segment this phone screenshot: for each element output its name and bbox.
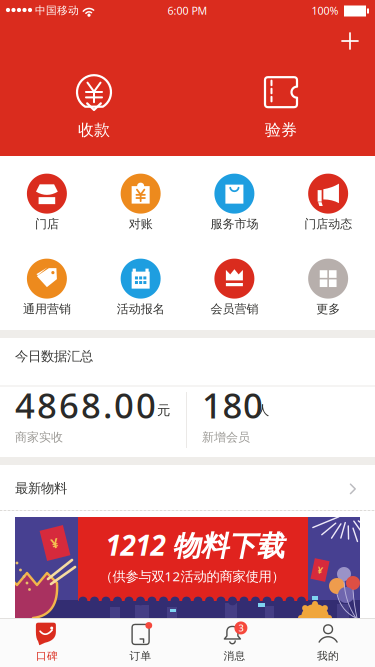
button[interactable]: 门店动态 (282, 169, 375, 235)
staticText: 4868.00 (15, 382, 156, 428)
staticText: 收款 (78, 120, 110, 140)
button[interactable]: 会员营销 (188, 254, 281, 320)
staticText: 门店 (35, 217, 59, 231)
staticText: 中国移动 (35, 4, 79, 17)
staticText: ¥ (51, 534, 59, 552)
staticText: 最新物料 (15, 480, 67, 496)
staticText: 对账 (129, 217, 153, 231)
staticText: 100% (311, 3, 338, 18)
staticText: 今日数据汇总 (15, 348, 93, 364)
button[interactable]: 最新物料 (0, 465, 375, 510)
button[interactable]: 3 (188, 618, 281, 666)
staticText: 活动报名 (117, 302, 165, 316)
staticText: 口碑 (36, 649, 58, 662)
button[interactable]: 服务市场 (188, 169, 281, 235)
button[interactable]: 验券 (206, 67, 356, 143)
staticText: 服务市场 (210, 217, 258, 231)
staticText: 1212 物料下载 (105, 526, 284, 564)
staticText: 消息 (223, 649, 245, 662)
staticText: 元 (157, 402, 170, 418)
button[interactable]: 对账 (94, 169, 187, 235)
staticText: 订单 (130, 649, 152, 662)
staticText: （供参与双12活动的商家使用） (99, 567, 284, 585)
staticText: 商家实收 (15, 430, 63, 445)
button[interactable]: 收款 (19, 67, 169, 143)
staticText: 180 (202, 382, 263, 428)
staticText: 新增会员 (202, 430, 250, 445)
button[interactable]: 通用营销 (0, 254, 93, 320)
staticText: 6:00 PM (167, 3, 207, 18)
button[interactable]: 我的 (282, 618, 375, 666)
staticText: ¥ (317, 564, 322, 576)
staticText: 人 (256, 402, 269, 418)
staticText: 会员营销 (210, 302, 258, 316)
staticText: 门店动态 (304, 217, 352, 231)
button[interactable]: 添加 (328, 27, 372, 55)
button[interactable]: 活动报名 (94, 254, 187, 320)
button[interactable]: 订单 (94, 618, 187, 666)
button[interactable]: 更多 (282, 254, 375, 320)
staticText: 更多 (316, 302, 340, 316)
staticText: 3 (238, 622, 243, 634)
button[interactable]: 口碑 (0, 618, 93, 666)
staticText: 通用营销 (23, 302, 71, 316)
button[interactable]: 1212 物料下载 (15, 517, 360, 618)
staticText: 我的 (317, 649, 339, 662)
button[interactable]: 门店 (0, 169, 93, 235)
staticText: 验券 (265, 120, 297, 140)
